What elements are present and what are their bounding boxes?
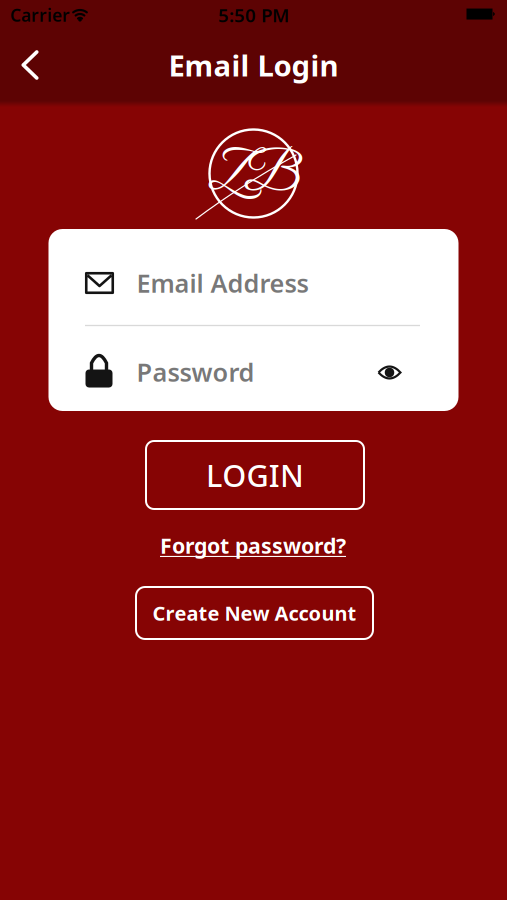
- staticText: Password: [136, 355, 254, 389]
- staticText: Carrier: [10, 3, 70, 26]
- staticText: Forgot password?: [160, 531, 346, 560]
- button[interactable]: Email Address: [66, 247, 440, 319]
- button[interactable]: Password: [66, 336, 376, 408]
- button[interactable]: LOGIN: [146, 441, 364, 509]
- staticText: Email Address: [136, 266, 308, 300]
- button[interactable]: Forgot password?: [156, 527, 350, 564]
- staticText: 5:50 PM: [218, 3, 289, 27]
- staticText: LOGIN: [206, 455, 304, 495]
- staticText: Email Login: [168, 45, 338, 84]
- button[interactable]: Show password: [367, 350, 411, 394]
- button[interactable]: Create New Account: [136, 587, 373, 639]
- button[interactable]: Back: [11, 40, 49, 90]
- staticText: ZB: [208, 143, 300, 209]
- staticText: Create New Account: [152, 600, 356, 626]
